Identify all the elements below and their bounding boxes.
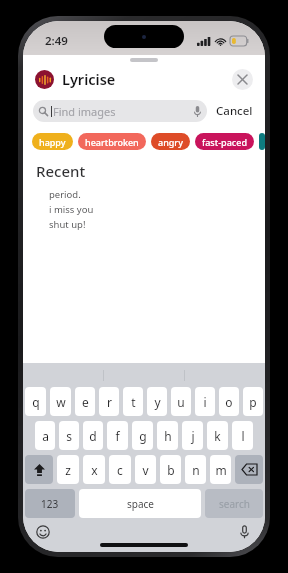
staticText: l: [241, 428, 245, 444]
other: Shift: [34, 464, 45, 476]
staticText: s: [66, 428, 72, 444]
button[interactable]: period.: [36, 187, 265, 202]
button[interactable]: k: [207, 421, 228, 450]
staticText: d: [89, 428, 97, 444]
staticText: Lyricise: [62, 69, 116, 89]
staticText: c: [117, 462, 123, 478]
button[interactable]: space: [79, 489, 201, 518]
staticText: i miss you: [49, 203, 94, 216]
button[interactable]: angry: [151, 133, 190, 150]
button[interactable]: t: [123, 387, 143, 416]
button[interactable]: z: [57, 455, 79, 484]
button[interactable]: q: [25, 387, 46, 416]
button[interactable]: shut up!: [36, 217, 265, 232]
staticText: t: [131, 394, 136, 410]
staticText: period.: [49, 188, 81, 201]
button[interactable]: p: [243, 387, 263, 416]
button[interactable]: Lyricise logo: [35, 70, 54, 89]
staticText: q: [32, 394, 40, 410]
staticText: happy: [39, 136, 66, 148]
button[interactable]: u: [171, 387, 191, 416]
staticText: m: [215, 462, 227, 478]
button[interactable]: search: [205, 489, 263, 518]
staticText: f: [115, 428, 120, 444]
button[interactable]: s: [59, 421, 79, 450]
button[interactable]: g: [132, 421, 153, 450]
button[interactable]: i miss you: [36, 202, 265, 217]
staticText: space: [127, 497, 154, 511]
button[interactable]: n: [185, 455, 206, 484]
button[interactable]: w: [50, 387, 71, 416]
staticText: k: [214, 428, 221, 444]
button[interactable]: fast-paced: [195, 133, 254, 150]
staticText: n: [192, 462, 200, 478]
button[interactable]: c: [109, 455, 131, 484]
staticText: b: [167, 462, 175, 478]
staticText: fast-paced: [202, 136, 247, 148]
button[interactable]: Dictation: [236, 524, 252, 540]
staticText: h: [164, 428, 172, 444]
button[interactable]: Backspace: [235, 455, 263, 484]
button[interactable]: 123: [25, 489, 75, 518]
staticText: x: [91, 462, 98, 478]
button[interactable]: i: [195, 387, 215, 416]
staticText: Cancel: [216, 103, 253, 119]
button[interactable]: calm: [259, 133, 265, 150]
staticText: r: [107, 394, 112, 410]
button[interactable]: Close: [232, 69, 253, 90]
button[interactable]: a: [35, 421, 55, 450]
button[interactable]: o: [219, 387, 239, 416]
button[interactable]: Cancel: [214, 100, 255, 122]
staticText: z: [65, 462, 71, 478]
other: Backspace: [242, 464, 257, 475]
button[interactable]: v: [135, 455, 156, 484]
staticText: v: [142, 462, 149, 478]
staticText: angry: [158, 136, 183, 148]
button[interactable]: happy: [32, 133, 73, 150]
button[interactable]: Find images: [33, 100, 207, 122]
staticText: u: [177, 394, 185, 410]
staticText: e: [82, 394, 89, 410]
button[interactable]: l: [232, 421, 253, 450]
staticText: 123: [41, 497, 59, 511]
button[interactable]: f: [107, 421, 128, 450]
staticText: a: [42, 428, 49, 444]
staticText: g: [139, 428, 147, 444]
button[interactable]: b: [160, 455, 181, 484]
staticText: o: [225, 394, 233, 410]
button[interactable]: Shift: [25, 455, 53, 484]
staticText: i: [203, 394, 207, 410]
button[interactable]: x: [83, 455, 105, 484]
button[interactable]: Emoji keyboard: [35, 524, 51, 540]
button[interactable]: d: [83, 421, 103, 450]
staticText: Find images: [53, 104, 116, 119]
staticText: shut up!: [49, 218, 86, 231]
button[interactable]: m: [210, 455, 231, 484]
staticText: j: [191, 428, 195, 444]
staticText: Recent: [36, 161, 86, 181]
staticText: p: [249, 394, 257, 410]
staticText: w: [56, 394, 66, 410]
staticText: y: [154, 394, 161, 410]
button[interactable]: h: [157, 421, 178, 450]
button[interactable]: e: [75, 387, 95, 416]
button[interactable]: heartbroken: [78, 133, 146, 150]
button[interactable]: j: [182, 421, 203, 450]
staticText: 2:49: [45, 33, 68, 49]
button[interactable]: r: [99, 387, 119, 416]
button[interactable]: y: [147, 387, 167, 416]
other: Voice search: [194, 106, 201, 117]
staticText: heartbroken: [85, 136, 139, 148]
staticText: search: [219, 497, 250, 511]
